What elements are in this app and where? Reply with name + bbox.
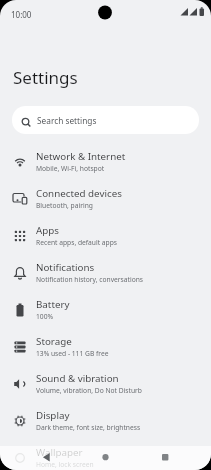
button[interactable] (36, 448, 56, 468)
button[interactable]: Apps (0, 217, 211, 254)
button[interactable]: Network & Internet (0, 143, 211, 180)
staticText: Notifications (36, 261, 95, 274)
staticText: 10:00 (11, 9, 32, 20)
staticText: Battery (36, 298, 70, 311)
button[interactable]: Display (0, 402, 211, 439)
staticText: Settings (13, 66, 78, 89)
staticText: Notification history, conversations (36, 275, 144, 284)
staticText: Display (36, 409, 70, 422)
button[interactable]: Wallpaper (0, 439, 211, 470)
staticText: Sound & vibration (36, 372, 119, 385)
staticText: Connected devices (36, 187, 122, 200)
staticText: Network & Internet (36, 150, 126, 163)
staticText: 100% (36, 312, 54, 321)
button[interactable]: Connected devices (0, 180, 211, 217)
staticText: Apps (36, 224, 60, 237)
button[interactable]: Notifications (0, 254, 211, 291)
staticText: Search settings (37, 115, 97, 126)
button[interactable]: Search settings (12, 106, 199, 134)
staticText: Dark theme, font size, brightness (36, 423, 141, 432)
staticText: 13% used - 111 GB free (36, 349, 109, 358)
button[interactable] (95, 448, 115, 468)
button[interactable] (155, 448, 175, 468)
staticText: Bluetooth, pairing (36, 201, 93, 210)
staticText: Recent apps, default apps (36, 238, 118, 247)
button[interactable]: Battery (0, 291, 211, 328)
staticText: Volume, vibration, Do Not Disturb (36, 386, 142, 395)
button[interactable]: Sound & vibration (0, 365, 211, 402)
staticText: Wallpaper (36, 446, 83, 459)
staticText: Mobile, Wi-Fi, hotspot (36, 164, 105, 173)
staticText: Storage (36, 335, 72, 348)
staticText: Home, lock screen (36, 460, 94, 469)
button[interactable]: Storage (0, 328, 211, 365)
